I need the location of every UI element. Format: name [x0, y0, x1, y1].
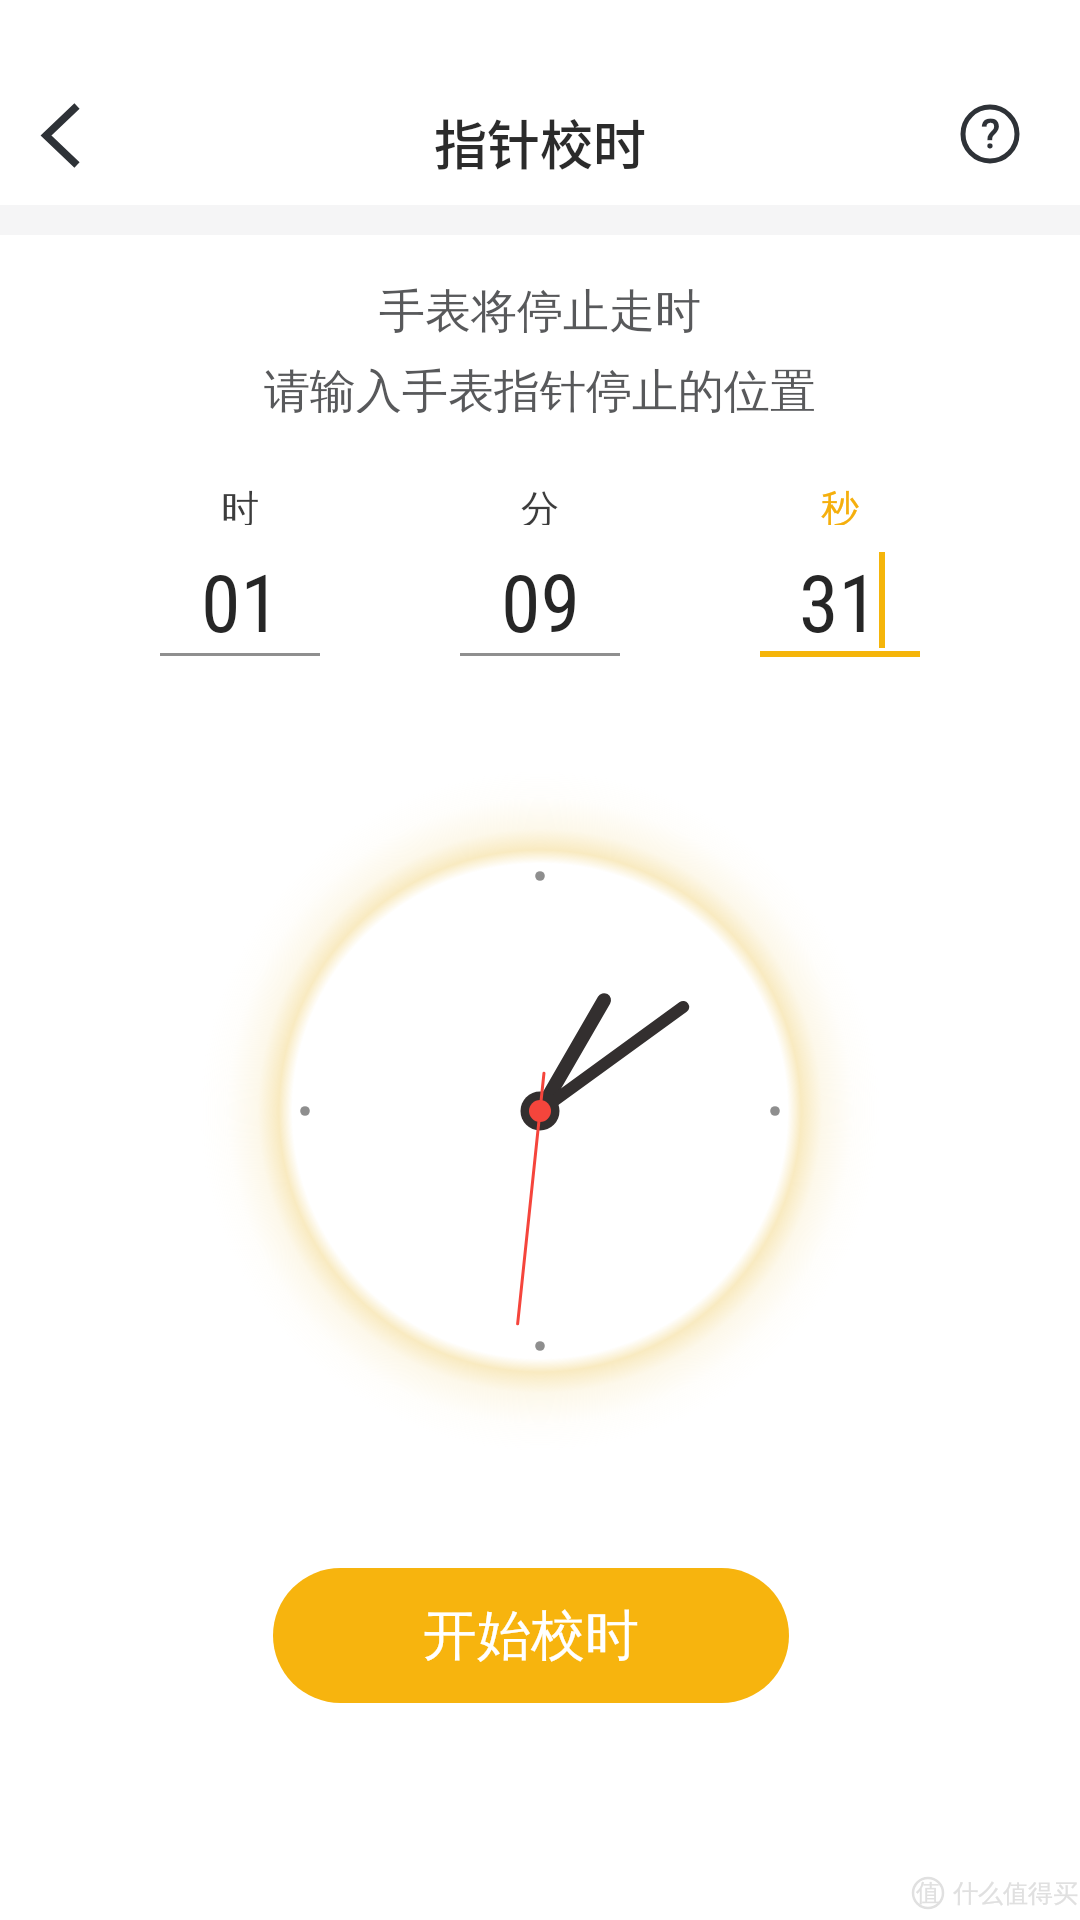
button[interactable]: [20, 95, 100, 175]
staticText: 手表将停止走时: [379, 283, 701, 333]
staticText: 秒: [821, 485, 859, 525]
button[interactable]: 01: [90, 557, 390, 653]
staticText: 指针校时: [434, 104, 646, 170]
staticText: 分: [521, 485, 559, 525]
button[interactable]: [950, 94, 1030, 174]
button[interactable]: 开始校时: [273, 1568, 789, 1703]
staticText: 09: [501, 558, 580, 652]
staticText: 请输入手表指针停止的位置: [264, 363, 816, 413]
staticText: 01: [201, 558, 280, 652]
button[interactable]: 09: [390, 557, 690, 653]
staticText: 什么值得买: [953, 1878, 1078, 1908]
staticText: 值: [916, 1878, 940, 1908]
staticText: ?: [981, 111, 1000, 158]
staticText: 31: [799, 558, 878, 652]
staticText: 时: [221, 485, 259, 525]
staticText: 开始校时: [423, 1602, 639, 1670]
button[interactable]: 31: [690, 557, 986, 653]
